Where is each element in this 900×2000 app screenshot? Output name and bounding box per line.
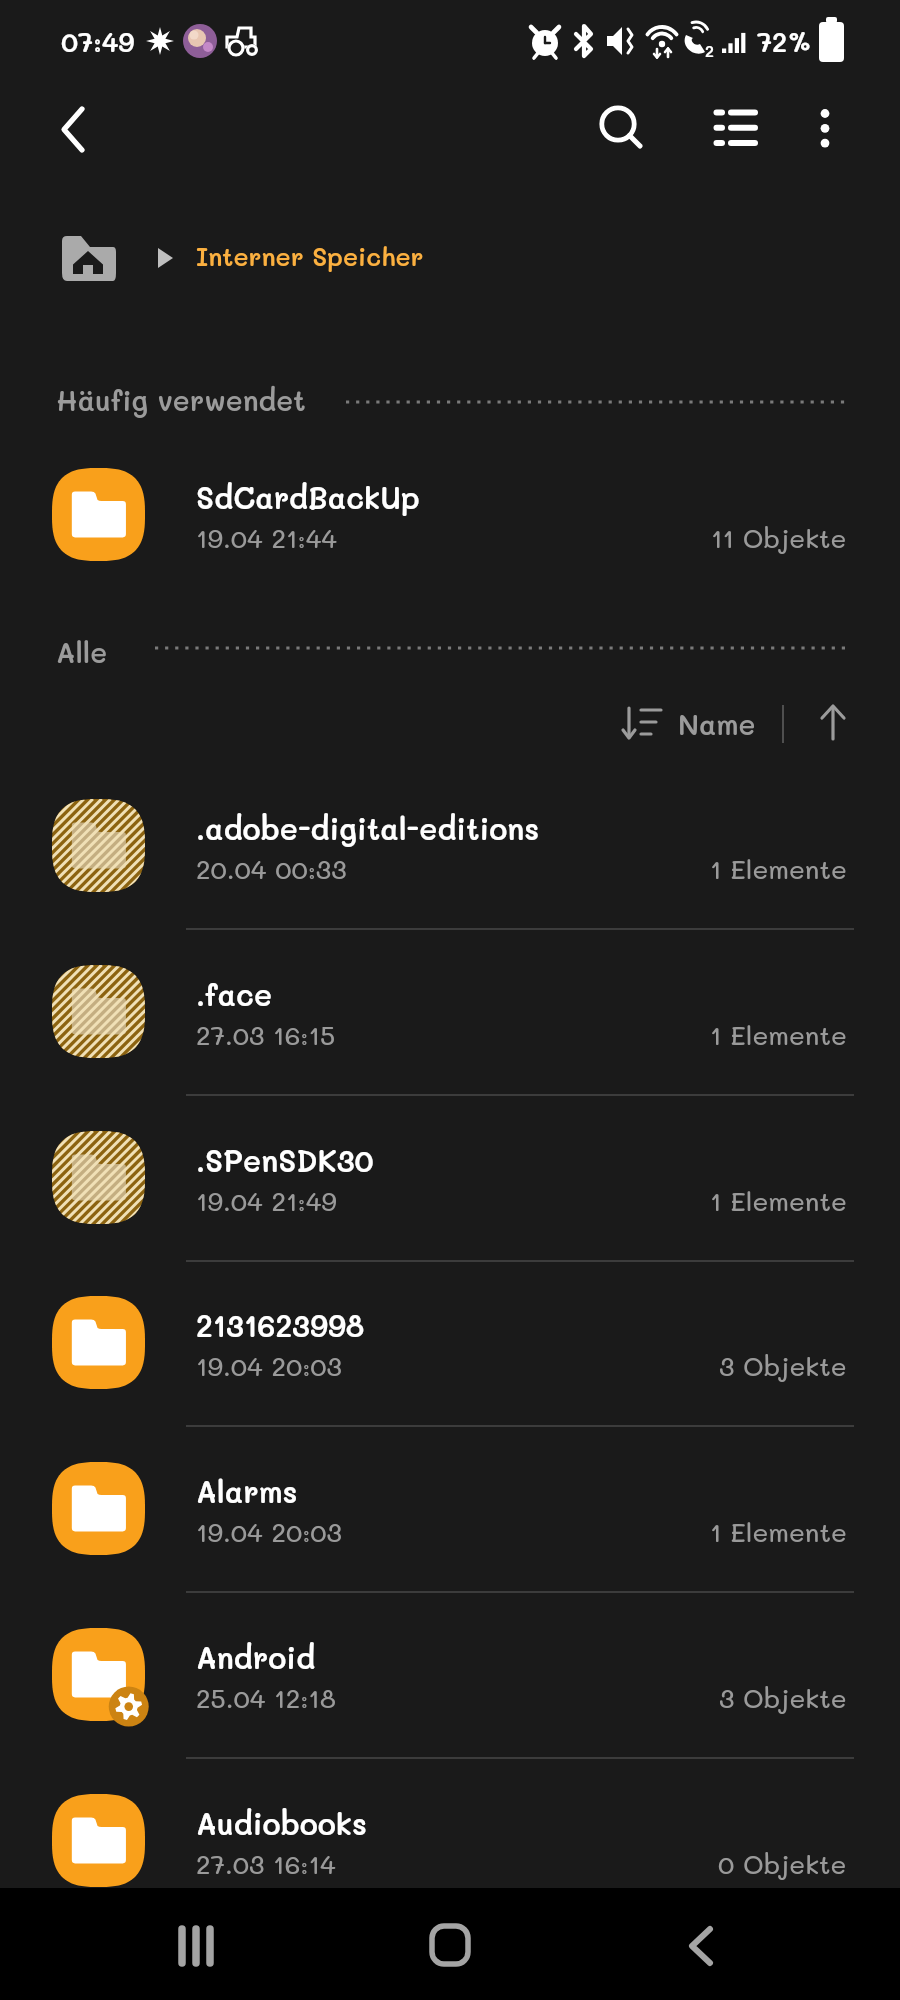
- button[interactable]: Audiobooks: [0, 1781, 900, 1923]
- staticText: 20.04 00:33: [196, 852, 347, 886]
- staticText: 3 Objekte: [719, 1349, 847, 1383]
- staticText: 0 Objekte: [718, 1847, 847, 1881]
- button[interactable]: Search: [585, 90, 653, 158]
- staticText: SdCardBackUp: [196, 478, 420, 517]
- staticText: 2131623998: [196, 1306, 365, 1345]
- button[interactable]: .SPenSDK30: [0, 1118, 900, 1260]
- staticText: Interner Speicher: [196, 240, 424, 272]
- button[interactable]: Home: [399, 1906, 499, 1982]
- staticText: 1 Elemente: [710, 852, 847, 886]
- button[interactable]: 2131623998: [0, 1283, 900, 1425]
- staticText: .SPenSDK30: [196, 1141, 374, 1180]
- staticText: 3 Objekte: [719, 1681, 847, 1715]
- button[interactable]: Android: [0, 1615, 900, 1757]
- button[interactable]: Interner Speicher: [0, 219, 900, 299]
- staticText: 27.03 16:15: [196, 1018, 336, 1052]
- button[interactable]: View as list: [697, 92, 765, 160]
- staticText: 19.04 21:44: [196, 521, 338, 555]
- button[interactable]: .face: [0, 952, 900, 1094]
- staticText: Häufig verwendet: [56, 382, 306, 418]
- staticText: .adobe-digital-editions: [196, 809, 540, 848]
- staticText: 19.04 21:49: [196, 1184, 337, 1218]
- button[interactable]: More options: [791, 92, 859, 160]
- button[interactable]: Alarms: [0, 1449, 900, 1591]
- staticText: 27.03 16:14: [196, 1847, 336, 1881]
- staticText: Audiobooks: [196, 1804, 367, 1843]
- staticText: Name: [678, 706, 756, 742]
- staticText: 2: [705, 40, 714, 61]
- button[interactable]: .adobe-digital-editions: [0, 786, 900, 928]
- staticText: 19.04 20:03: [196, 1349, 342, 1383]
- staticText: Alle: [56, 634, 108, 670]
- staticText: 07:49: [61, 24, 135, 59]
- staticText: 11 Objekte: [711, 521, 847, 555]
- staticText: Alarms: [196, 1472, 298, 1511]
- staticText: Android: [196, 1638, 316, 1677]
- staticText: 1 Elemente: [710, 1018, 847, 1052]
- staticText: 1 Elemente: [710, 1515, 847, 1549]
- button[interactable]: SdCardBackUp: [0, 455, 900, 597]
- button[interactable]: Back: [651, 1906, 751, 1982]
- button[interactable]: Name: [618, 688, 854, 760]
- staticText: 19.04 20:03: [196, 1515, 342, 1549]
- button[interactable]: Recent apps: [146, 1906, 246, 1982]
- staticText: .face: [196, 975, 273, 1014]
- staticText: 1 Elemente: [710, 1184, 847, 1218]
- staticText: 72%: [757, 24, 813, 59]
- button[interactable]: Navigate up: [36, 88, 112, 164]
- staticText: 25.04 12:18: [196, 1681, 336, 1715]
